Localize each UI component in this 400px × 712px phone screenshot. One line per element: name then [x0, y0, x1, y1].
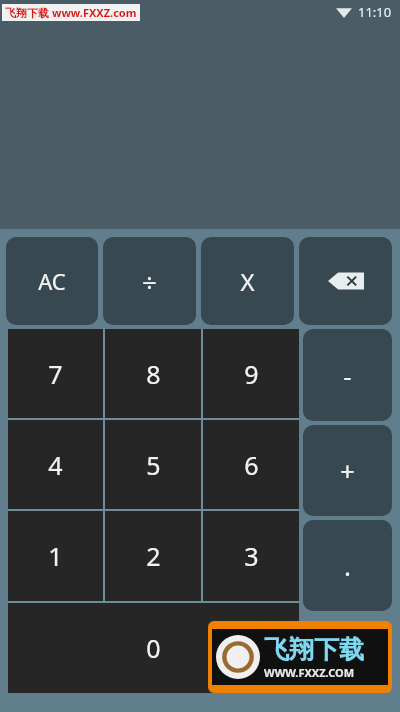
staticText: 1 [48, 539, 63, 573]
staticText: ÷ [142, 264, 157, 299]
button[interactable]: Equals [208, 621, 392, 693]
staticText: 8 [146, 357, 161, 391]
button[interactable]: X [201, 237, 294, 325]
button[interactable]: 9 [203, 329, 299, 418]
staticText: AC [38, 266, 66, 296]
staticText: 飞翔下载 [264, 634, 364, 665]
staticText: . [344, 548, 351, 583]
button[interactable]: 1 [8, 511, 103, 601]
button[interactable]: 5 [105, 420, 201, 509]
staticText: 3 [244, 539, 259, 573]
button[interactable]: . [303, 520, 392, 611]
button[interactable]: 8 [105, 329, 201, 418]
staticText: 7 [48, 357, 63, 391]
staticText: + [340, 453, 355, 488]
button[interactable]: 4 [8, 420, 103, 509]
button[interactable]: 6 [203, 420, 299, 509]
staticText: - [343, 358, 352, 393]
button[interactable]: AC [6, 237, 98, 325]
button[interactable]: 2 [105, 511, 201, 601]
staticText: 飞翔下载 [5, 6, 49, 20]
button[interactable]: 0 [8, 603, 299, 693]
staticText: 5 [146, 448, 161, 482]
button[interactable]: ÷ [103, 237, 196, 325]
staticText: X [240, 265, 255, 298]
staticText: 9 [244, 357, 259, 391]
staticText: WWW.FXXZ.COM [264, 665, 355, 680]
button[interactable]: 7 [8, 329, 103, 418]
button[interactable]: Backspace [299, 237, 392, 325]
button[interactable]: + [303, 425, 392, 516]
staticText: 2 [146, 539, 161, 573]
staticText: www.FXXZ.com [52, 5, 137, 20]
button[interactable]: - [303, 329, 392, 421]
staticText: 4 [48, 448, 63, 482]
staticText: 0 [146, 631, 161, 665]
button[interactable]: 3 [203, 511, 299, 601]
staticText: 6 [244, 448, 259, 482]
staticText: 11:10 [358, 3, 392, 21]
